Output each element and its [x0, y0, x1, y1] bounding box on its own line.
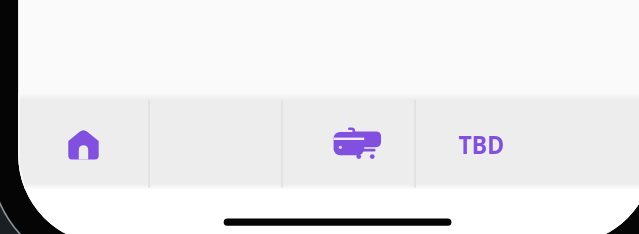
button[interactable]: TBD [415, 97, 548, 188]
button[interactable]: Home [18, 97, 149, 188]
button[interactable]: Payment cards [282, 97, 415, 188]
